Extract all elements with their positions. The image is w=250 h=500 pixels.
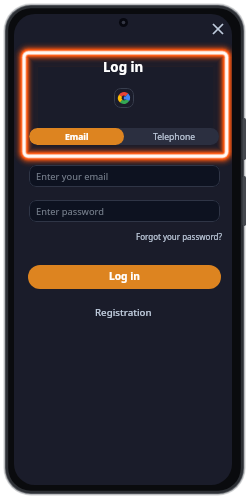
staticText: Log in: [109, 269, 140, 283]
button[interactable]: Email: [29, 128, 124, 145]
button[interactable]: Telephone: [124, 128, 219, 145]
button[interactable]: Log in: [28, 265, 221, 289]
staticText: Enter password: [36, 205, 104, 218]
button[interactable]: Forgot your password?: [136, 231, 222, 242]
button[interactable]: Registration: [95, 306, 152, 319]
staticText: Telephone: [153, 131, 196, 143]
staticText: Enter your email: [36, 170, 109, 183]
staticText: Log in: [14, 58, 232, 76]
button[interactable]: Close: [205, 16, 231, 42]
button[interactable]: Sign in with Google: [114, 88, 134, 108]
staticText: Email: [65, 131, 89, 143]
button[interactable]: Enter your email: [29, 165, 220, 187]
button[interactable]: Enter password: [29, 200, 220, 222]
